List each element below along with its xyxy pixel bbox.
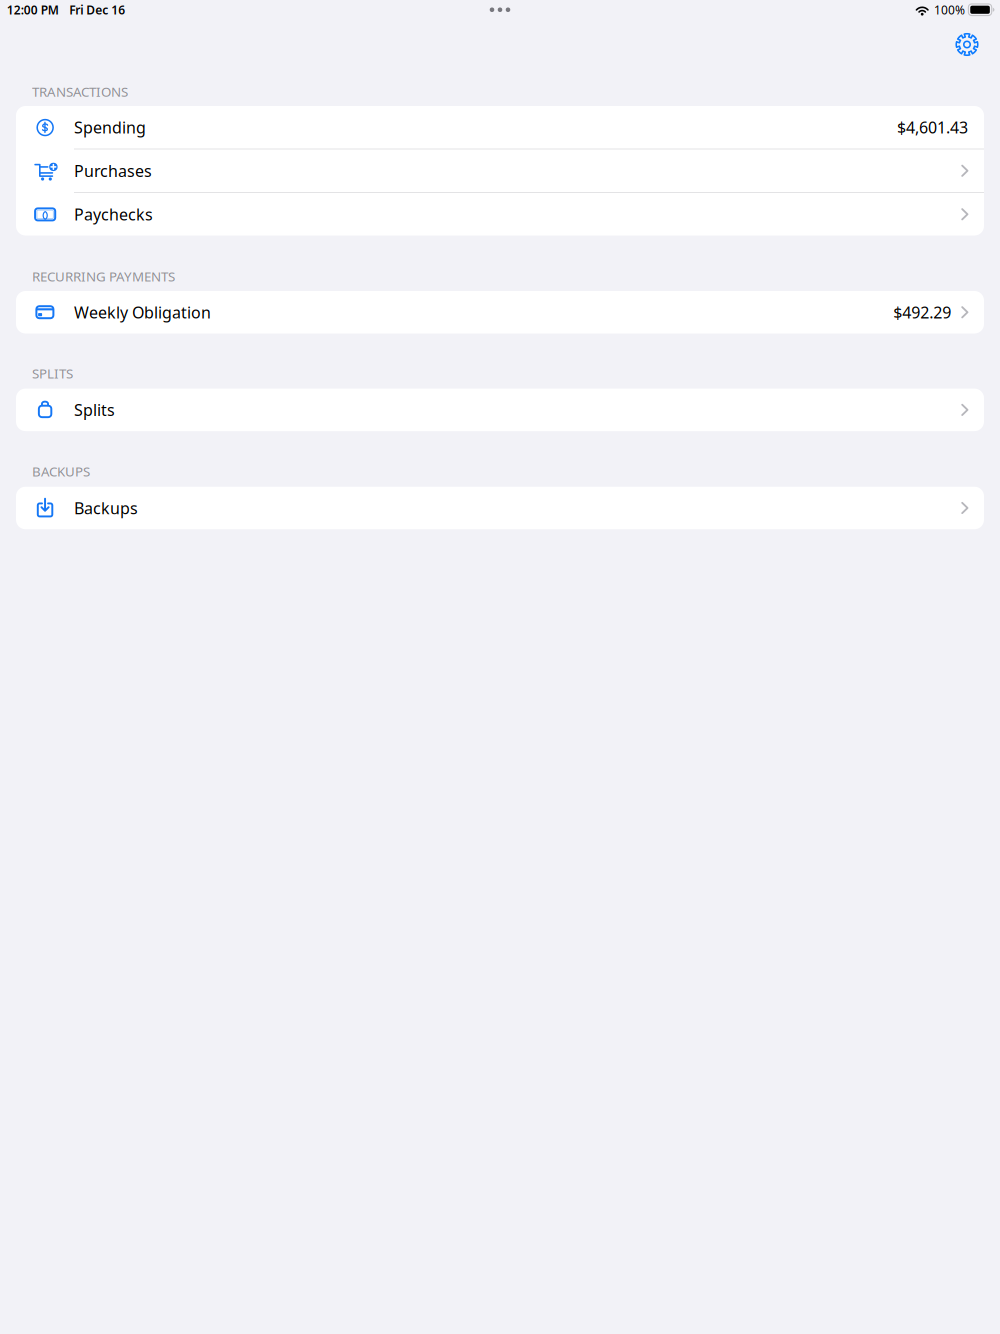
- staticText: Fri Dec 16: [69, 2, 125, 18]
- staticText: Weekly Obligation: [74, 302, 211, 323]
- staticText: $4,601.43: [897, 117, 968, 138]
- staticText: BACKUPS: [32, 462, 90, 480]
- staticText: Paychecks: [74, 204, 153, 225]
- staticText: 12:00 PM: [7, 2, 59, 18]
- button[interactable]: Splits: [16, 389, 984, 431]
- button[interactable]: Backups: [16, 487, 984, 529]
- staticText: RECURRING PAYMENTS: [32, 267, 175, 285]
- button[interactable]: Spending: [16, 106, 984, 148]
- button[interactable]: Paychecks: [16, 193, 984, 235]
- staticText: Backups: [74, 497, 138, 519]
- staticText: Splits: [74, 399, 115, 420]
- staticText: $492.29: [893, 302, 951, 323]
- button[interactable]: Purchases: [16, 149, 984, 192]
- staticText: 100%: [934, 2, 965, 18]
- staticText: TRANSACTIONS: [32, 83, 128, 100]
- staticText: Spending: [74, 117, 146, 138]
- staticText: Purchases: [74, 160, 152, 181]
- button[interactable]: Settings: [950, 27, 984, 61]
- button[interactable]: Weekly Obligation: [16, 291, 984, 333]
- staticText: SPLITS: [32, 364, 73, 382]
